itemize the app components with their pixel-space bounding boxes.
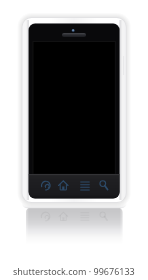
staticText: shutterstock.com · 99676133 — [13, 265, 135, 277]
